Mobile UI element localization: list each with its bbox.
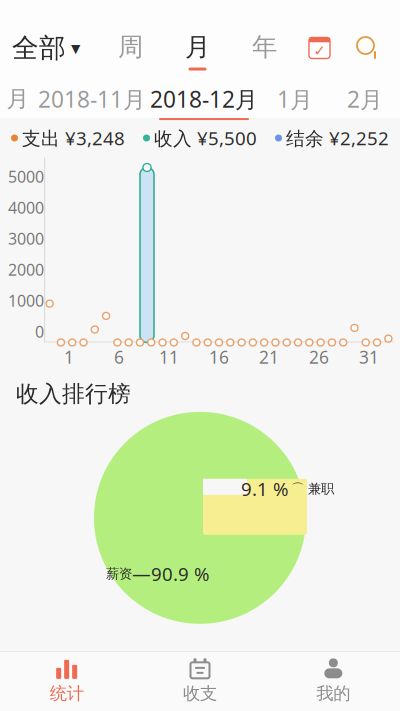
staticText: 结余 ¥2,252 xyxy=(286,126,389,150)
button[interactable]: Calendar xyxy=(303,31,336,64)
staticText: 11 xyxy=(159,345,179,368)
staticText: 周 xyxy=(118,31,143,62)
staticText: 2月 xyxy=(347,84,383,114)
staticText: 2000 xyxy=(8,259,44,280)
button[interactable]: 1月 xyxy=(260,74,330,118)
button[interactable]: 月 xyxy=(177,25,218,70)
staticText: 收支 xyxy=(183,683,217,704)
staticText: 1月 xyxy=(277,84,313,114)
staticText: 9.1 % xyxy=(241,476,289,501)
staticText: 统计 xyxy=(50,683,84,704)
staticText: 年 xyxy=(252,31,277,62)
staticText: 1 xyxy=(64,345,74,368)
button[interactable]: 我的 xyxy=(267,651,400,711)
button[interactable]: 统计 xyxy=(0,651,133,711)
button[interactable]: 周 xyxy=(110,25,151,70)
staticText: 31 xyxy=(359,345,379,368)
staticText: 薪资 xyxy=(106,566,132,582)
button[interactable]: 2018-12月 xyxy=(148,74,260,118)
button[interactable]: 年 xyxy=(244,25,285,70)
staticText: 21 xyxy=(259,345,279,368)
staticText: 2018-12月 xyxy=(150,84,258,114)
staticText: 0 xyxy=(35,321,44,342)
staticText: 3000 xyxy=(8,228,44,249)
button[interactable]: 2018-11月 xyxy=(36,74,148,118)
button[interactable]: 月 xyxy=(0,74,36,118)
staticText: —90.9 % xyxy=(132,561,210,586)
staticText: 4000 xyxy=(8,197,44,218)
staticText: 2018-11月 xyxy=(38,84,146,114)
staticText: 5000 xyxy=(8,166,44,187)
button[interactable]: 全部 xyxy=(0,24,92,72)
staticText: 16 xyxy=(209,345,229,368)
staticText: 6 xyxy=(114,345,124,368)
staticText: 支出 ¥3,248 xyxy=(22,126,125,150)
staticText: ✓ xyxy=(313,42,325,59)
button[interactable]: 2月 xyxy=(330,74,400,118)
staticText: 全部 xyxy=(12,32,66,64)
staticText: ▾ xyxy=(71,37,80,59)
staticText: 收入 ¥5,500 xyxy=(154,126,257,150)
staticText: 我的 xyxy=(316,683,350,704)
staticText: 月 xyxy=(6,85,29,113)
staticText: ⌒ 兼职 xyxy=(291,481,334,497)
button[interactable]: 收支 xyxy=(133,651,267,711)
staticText: 26 xyxy=(309,345,329,368)
staticText: 收入排行榜 xyxy=(16,380,131,408)
staticText: 月 xyxy=(185,31,210,62)
staticText: 1000 xyxy=(8,290,44,311)
button[interactable]: Search xyxy=(352,32,384,64)
